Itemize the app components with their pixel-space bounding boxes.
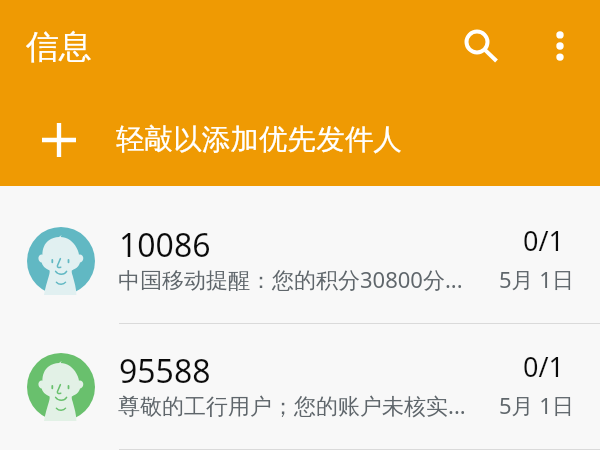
staticText: 信息: [26, 26, 92, 68]
staticText: 5月 1日: [499, 264, 574, 294]
button[interactable]: 95588: [0, 324, 600, 449]
staticText: 中国移动提醒：您的积分30800分...: [118, 264, 473, 294]
button[interactable]: More options: [529, 15, 591, 77]
staticText: 轻敲以添加优先发件人: [116, 121, 402, 157]
staticText: 10086: [119, 223, 211, 267]
button[interactable]: 轻敲以添加优先发件人: [0, 92, 600, 186]
staticText: 5月 1日: [499, 390, 574, 420]
button[interactable]: 10086: [0, 198, 600, 323]
button[interactable]: Search: [450, 15, 512, 77]
staticText: 0/1: [523, 348, 564, 385]
staticText: 0/1: [523, 222, 564, 259]
staticText: 95588: [119, 349, 211, 393]
staticText: 尊敬的工行用户；您的账户未核实...: [118, 390, 473, 420]
